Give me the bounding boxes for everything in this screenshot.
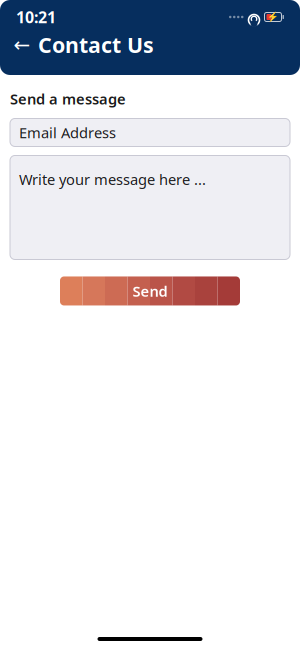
staticText: 10:21 [16,6,56,28]
staticText: ← [13,33,30,56]
button[interactable]: Back [14,34,30,56]
staticText: ⚡ [267,12,279,22]
staticText: Send a message [10,89,126,108]
staticText: Write your message here ... [19,169,206,189]
staticText: Send [132,281,167,301]
button[interactable]: Email Address [10,118,290,146]
staticText: Contact Us [38,31,154,59]
staticText: Email Address [19,123,116,142]
button[interactable]: Write your message here ... [10,155,290,259]
button[interactable]: Send [60,276,240,305]
